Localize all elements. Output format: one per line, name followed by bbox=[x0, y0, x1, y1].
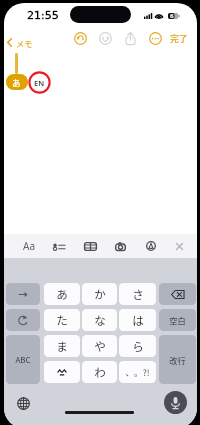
button[interactable]: た bbox=[44, 309, 80, 331]
staticText: わ bbox=[94, 364, 106, 381]
button[interactable]: Redo bbox=[96, 29, 114, 47]
button[interactable]: Dictation bbox=[164, 391, 187, 414]
button[interactable]: 空白 bbox=[159, 309, 196, 331]
button[interactable]: か bbox=[82, 283, 117, 305]
staticText: 6 bbox=[170, 13, 174, 20]
button[interactable]: ま bbox=[44, 335, 80, 357]
button[interactable]: Emoticon bbox=[44, 361, 80, 383]
staticText: ら bbox=[132, 338, 144, 355]
button[interactable]: は bbox=[119, 309, 156, 331]
staticText: な bbox=[94, 312, 106, 329]
button[interactable]: ら bbox=[119, 335, 156, 357]
button[interactable]: 改行 bbox=[159, 335, 196, 384]
button[interactable]: 、。?! bbox=[119, 361, 156, 383]
button[interactable]: Switch keyboard bbox=[17, 397, 30, 410]
button[interactable]: あ bbox=[44, 283, 80, 305]
staticText: さ bbox=[132, 286, 144, 303]
staticText: 改行 bbox=[169, 354, 186, 366]
button[interactable]: Next candidate bbox=[6, 283, 40, 305]
button[interactable]: Aa bbox=[19, 236, 39, 256]
staticText: か bbox=[94, 286, 106, 303]
staticText: ABC bbox=[15, 354, 31, 366]
staticText: は bbox=[132, 312, 144, 329]
staticText: 21:55 bbox=[27, 9, 59, 22]
staticText: 完了 bbox=[170, 32, 188, 45]
staticText: 、。?! bbox=[125, 366, 150, 378]
button[interactable]: Undo bbox=[71, 29, 89, 47]
button[interactable]: Undo bbox=[6, 309, 40, 331]
staticText: あ bbox=[56, 286, 68, 303]
button[interactable]: Markup bbox=[140, 236, 162, 256]
button[interactable]: Camera bbox=[109, 236, 131, 256]
staticText: 空白 bbox=[169, 314, 186, 326]
button[interactable]: Close keyboard bbox=[168, 236, 190, 256]
staticText: や bbox=[94, 338, 106, 355]
button[interactable]: な bbox=[82, 309, 117, 331]
staticText: た bbox=[56, 312, 68, 329]
staticText: Aa bbox=[23, 239, 35, 253]
button[interactable]: さ bbox=[119, 283, 156, 305]
button[interactable]: メモ bbox=[5, 30, 35, 47]
button[interactable]: わ bbox=[82, 361, 117, 383]
button[interactable]: Checklist bbox=[48, 237, 70, 257]
button[interactable]: や bbox=[82, 335, 117, 357]
button[interactable]: ABC bbox=[6, 335, 40, 384]
staticText: メモ bbox=[16, 37, 33, 49]
button[interactable]: あ bbox=[6, 74, 28, 90]
button[interactable]: Share bbox=[121, 29, 139, 47]
staticText: EN bbox=[34, 78, 45, 88]
button[interactable]: Backspace bbox=[159, 283, 196, 305]
staticText: あ bbox=[12, 76, 21, 88]
button[interactable]: More options bbox=[146, 29, 164, 47]
staticText: ま bbox=[56, 338, 68, 355]
button[interactable]: 完了 bbox=[166, 30, 192, 46]
button[interactable]: Table bbox=[79, 236, 101, 256]
